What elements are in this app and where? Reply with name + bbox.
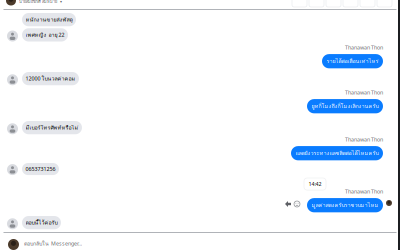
button[interactable]: 12000 โบนวลค่าคอม: [0, 72, 400, 85]
button[interactable]: Chat tab: [377, 0, 392, 10]
staticText: 12000 โบนวลค่าคอม: [25, 74, 75, 83]
staticText: ยูทกี่โมงถึงกี่โมงเลิกงานครับ: [311, 102, 378, 110]
staticText: มีเบอร์โทรศัพท์หรือไม่: [25, 123, 78, 132]
button[interactable]: React: [294, 201, 300, 207]
staticText: หนักงานขายส่งพัสดุ: [25, 15, 72, 24]
staticText: รายได้ต่อเดือนเท่าไหร่: [326, 57, 378, 65]
button[interactable]: Thanawan Thon: [0, 44, 400, 68]
staticText: Thanawan Thon: [345, 44, 383, 51]
staticText: 0653731256: [25, 165, 55, 173]
button[interactable]: Thanawan Thon: [0, 188, 400, 212]
button[interactable]: Thanawan Thon: [0, 136, 400, 160]
button[interactable]: Chat tab: [292, 0, 307, 10]
staticText: แลดยังวระทางแลชติดต่อได้ไหมครับ: [295, 149, 378, 157]
button[interactable]: ตอบกลับใน Messenger…: [0, 233, 400, 250]
staticText: ตอบนี้ไว้ค่อรับ: [25, 218, 57, 227]
button[interactable]: Chat tab: [326, 0, 341, 10]
staticText: Thanawan Thon: [345, 188, 383, 195]
button[interactable]: Thanawan Thon: [0, 89, 400, 113]
button[interactable]: Chat tab: [309, 0, 324, 10]
button[interactable]: 0653731256: [0, 163, 400, 175]
staticText: ▾: [60, 0, 62, 4]
staticText: นายสมเกียรติ สมหมาย: [19, 0, 57, 5]
button[interactable]: ตอบนี้ไว้ค่อรับ: [0, 216, 400, 229]
staticText: ตอบกลับใน Messenger…: [24, 239, 82, 248]
staticText: 14:42: [308, 180, 321, 188]
button[interactable]: หนักงานขายส่งพัสดุ: [0, 13, 400, 41]
staticText: Thanawan Thon: [345, 89, 383, 96]
button[interactable]: Reply: [285, 201, 291, 207]
button[interactable]: นายสมเกียรติ สมหมาย: [0, 0, 62, 9]
staticText: เพศหญิง อายุ 22: [25, 31, 64, 39]
button[interactable]: Chat tab: [360, 0, 375, 10]
button[interactable]: มีเบอร์โทรศัพท์หรือไม่: [0, 121, 400, 134]
staticText: Thanawan Thon: [345, 136, 383, 143]
button[interactable]: Chat tab: [343, 0, 358, 10]
staticText: มูลค่าสดงครับราชวบมาไหม: [311, 201, 378, 209]
